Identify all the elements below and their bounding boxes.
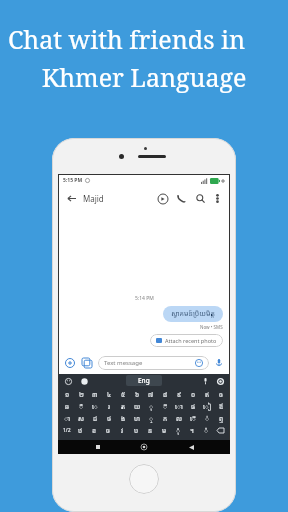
button[interactable]: ុ [144,400,158,412]
button[interactable]: ក [158,412,172,424]
button[interactable]: ល [172,412,186,424]
button[interactable]: 1/2 [60,424,73,436]
button[interactable]: រ [102,400,116,412]
button[interactable]: ្ [144,412,158,424]
button[interactable]: Enter [205,436,228,449]
button[interactable]: ០ [186,388,200,400]
staticText: ៧ [148,390,154,399]
button[interactable]: Backspace [213,424,228,436]
button[interactable]: . [186,436,205,449]
button[interactable]: ៤ [102,388,116,400]
button[interactable]: Space [101,436,186,449]
button[interactable]: Voice typing [200,376,210,386]
button[interactable]: Add attachment [63,356,77,370]
button[interactable]: , [82,436,101,449]
button[interactable]: Search [193,191,208,206]
staticText: ១ [65,390,70,399]
button[interactable]: ឥ [200,388,214,400]
button[interactable]: Keyboard settings [215,376,225,386]
button[interactable]: Voice input [213,357,225,369]
button[interactable]: ត [116,400,130,412]
button[interactable]: ើ [186,412,200,424]
staticText: ោ [175,402,183,411]
staticText: ០ [191,390,196,399]
button[interactable]: ម [157,424,171,436]
button[interactable]: ហ [130,412,144,424]
button[interactable]: Back [184,440,198,454]
button[interactable]: Gallery [80,356,94,370]
button[interactable]: ឲ [214,388,228,400]
staticText: Attach recent photo [165,337,217,344]
button[interactable]: Text message [98,356,209,370]
staticText: ល [176,414,183,423]
staticText: ន [148,426,153,435]
staticText: ៣ [92,390,98,399]
button[interactable]: ុំ [171,424,185,436]
button[interactable]: េ [88,400,102,412]
button[interactable]: Eng [126,375,162,386]
button[interactable]: 1/2 [60,436,82,449]
button[interactable]: ឹ [74,400,88,412]
button[interactable]: More options [211,192,224,205]
button[interactable]: ។ [185,424,199,436]
button[interactable]: ា [60,412,74,424]
button[interactable]: ង [116,412,130,424]
staticText: 1/2 [63,427,71,434]
button[interactable]: ថ [102,412,116,424]
button[interactable]: ៀ [200,400,214,412]
staticText: ឥ [205,390,210,399]
button[interactable]: ៉ [199,424,213,436]
button[interactable]: ៩ [172,388,186,400]
button[interactable]: ី [158,400,172,412]
button[interactable]: ឋ [73,424,87,436]
staticText: ប [134,426,139,435]
button[interactable]: ស [74,412,88,424]
staticText: យ [134,402,141,411]
staticText: ៨ [163,390,168,399]
button[interactable]: ១ [60,388,74,400]
staticText: ៤ [107,390,112,399]
button[interactable]: Home button [129,464,159,494]
button[interactable]: Back [64,191,78,205]
button[interactable]: ៦ [130,388,144,400]
staticText: ខ [92,426,97,435]
button[interactable]: ឮ [214,412,228,424]
staticText: ។ [190,426,194,435]
staticText: ឆ [65,402,70,411]
button[interactable]: ឪ [214,400,228,412]
button[interactable]: ៣ [88,388,102,400]
button[interactable]: ់ [200,412,214,424]
staticText: ី [163,402,168,411]
staticText: Majid [83,193,104,204]
button[interactable]: ដ [88,412,102,424]
staticText: រ [108,402,110,411]
button[interactable]: Attach recent photo [150,334,223,347]
button[interactable]: Emoji [63,376,73,386]
button[interactable]: Theme [79,376,89,386]
staticText: ត [121,402,126,411]
button[interactable]: ច [101,424,115,436]
button[interactable]: Video call [155,191,170,206]
staticText: ឮ [219,414,224,423]
button[interactable]: ផ [186,400,200,412]
button[interactable]: ោ [172,400,186,412]
button[interactable]: យ [130,400,144,412]
button[interactable]: វ [115,424,129,436]
staticText: Now • SMS [200,324,223,330]
staticText: ៩ [177,390,182,399]
staticText: ក [163,414,168,423]
staticText: ៉ [204,426,209,435]
button[interactable]: ន [143,424,157,436]
staticText: ស្វាគមន៍ប្រិយមិត្ត [171,309,215,319]
button[interactable]: ប [129,424,143,436]
button[interactable]: ឆ [60,400,74,412]
button[interactable]: ២ [74,388,88,400]
button[interactable]: Recent apps [91,440,105,454]
button[interactable]: ៨ [158,388,172,400]
button[interactable]: ស្វាគមន៍ប្រិយមិត្ត [163,306,223,322]
button[interactable]: Call [174,191,189,206]
button[interactable]: Home [137,440,151,454]
button[interactable]: ៥ [116,388,130,400]
button[interactable]: ៧ [144,388,158,400]
button[interactable]: ខ [87,424,101,436]
